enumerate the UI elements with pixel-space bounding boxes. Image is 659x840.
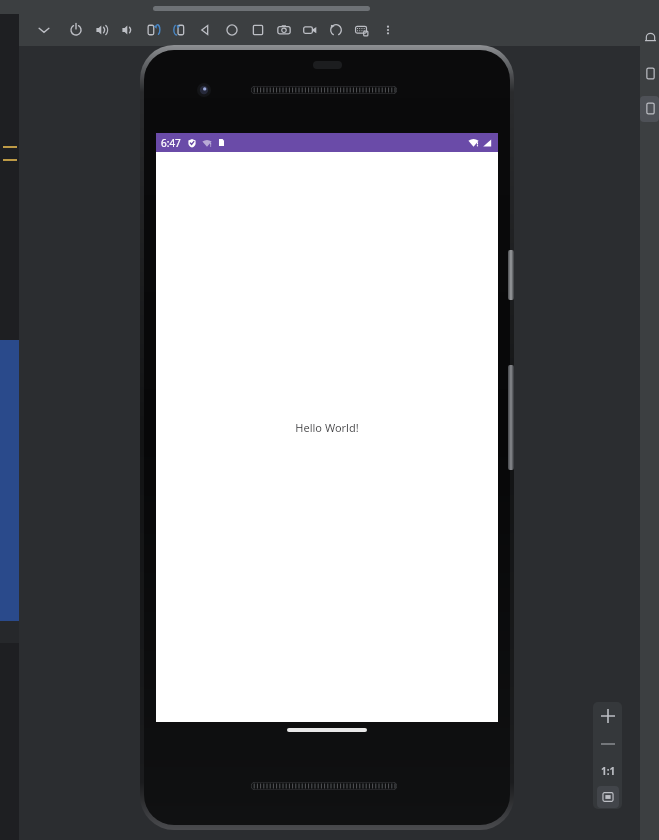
button[interactable]: Running devices: [640, 96, 659, 122]
button[interactable]: Volume up: [89, 16, 115, 44]
button[interactable]: Collapse: [31, 16, 57, 44]
button[interactable]: Volume down: [115, 16, 141, 44]
button[interactable]: Screenshot: [271, 16, 297, 44]
button[interactable]: Notifications: [640, 26, 659, 50]
button[interactable]: More: [375, 16, 401, 44]
staticText: 1:1: [601, 764, 616, 778]
button[interactable]: Power: [63, 16, 89, 44]
staticText: Hello World!: [295, 420, 359, 435]
button[interactable]: Device manager: [640, 62, 659, 86]
button[interactable]: Snapshots: [323, 16, 349, 44]
button[interactable]: Record screen: [297, 16, 323, 44]
button[interactable]: Rotate right: [167, 16, 193, 44]
button[interactable]: Back: [193, 16, 219, 44]
button[interactable]: Zoom out: [595, 731, 621, 757]
button[interactable]: Keyboard: [349, 16, 375, 44]
staticText: 6:47: [161, 136, 181, 150]
button[interactable]: Actual size: [595, 758, 621, 784]
button[interactable]: Zoom to fit: [597, 786, 619, 808]
button[interactable]: Home: [219, 16, 245, 44]
button[interactable]: Rotate left: [141, 16, 167, 44]
button[interactable]: Zoom in: [595, 703, 621, 729]
button[interactable]: Overview: [245, 16, 271, 44]
